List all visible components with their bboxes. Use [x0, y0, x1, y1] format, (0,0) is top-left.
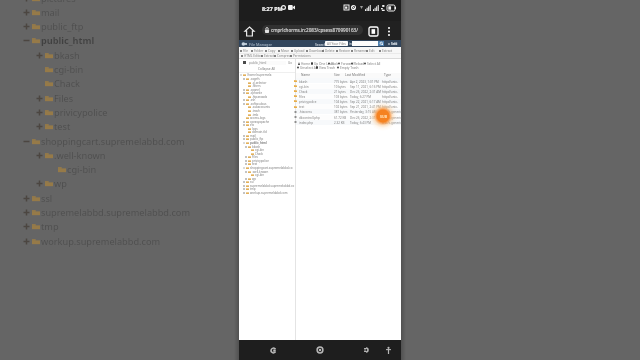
staticText: Files [252, 155, 259, 159]
button[interactable]: HTML Editor [241, 53, 262, 58]
button[interactable]: Upload [291, 48, 305, 53]
button[interactable]: test [239, 162, 295, 166]
button[interactable]: File [240, 48, 248, 53]
button[interactable]: .cagefs [239, 77, 295, 81]
button[interactable]: public_html [239, 141, 295, 145]
button[interactable]: privicypolice [239, 159, 295, 163]
staticText: Yesterday, 3:15 AM [350, 110, 377, 114]
button[interactable] [296, 99, 401, 104]
staticText: httpd/unix-dire [382, 90, 402, 94]
staticText: shoppingcart.supremelabbd.com [41, 135, 185, 148]
staticText: cgi-bin [255, 173, 265, 177]
button[interactable]: Compress [274, 53, 292, 58]
button[interactable]: Accessibility [382, 344, 394, 356]
button[interactable]: etc [239, 123, 295, 127]
button[interactable]: Unselect All [297, 65, 318, 70]
button[interactable]: Search type [325, 41, 348, 46]
button[interactable]: Home [298, 61, 311, 66]
button[interactable]: Restore [336, 48, 351, 53]
button[interactable]: Forward [338, 61, 354, 66]
button[interactable]: mail [239, 134, 295, 138]
staticText: Upload [294, 49, 305, 53]
staticText: File [243, 49, 248, 53]
button[interactable]: Folder [251, 48, 264, 53]
button[interactable]: Reload [351, 61, 365, 66]
staticText: httpd/unix-dire [382, 85, 402, 89]
staticText: Extract [264, 54, 275, 58]
button[interactable]: .softaculous [239, 102, 295, 106]
staticText: tmp [250, 187, 256, 191]
button[interactable]: View Trash [316, 65, 335, 70]
button[interactable]: bkash [239, 145, 295, 149]
button[interactable] [296, 84, 401, 89]
button[interactable]: Delete [322, 48, 335, 53]
button[interactable] [296, 104, 401, 109]
button[interactable]: .cphorde [239, 91, 295, 95]
button[interactable]: Download [306, 48, 324, 53]
button[interactable] [296, 78, 401, 83]
button[interactable]: access-logs [239, 116, 295, 120]
button[interactable]: .tmb [239, 113, 295, 117]
button[interactable] [296, 94, 401, 99]
button[interactable]: .trash [239, 109, 295, 113]
staticText: Edit [369, 49, 375, 53]
button[interactable]: Empty Trash [337, 65, 359, 70]
staticText: .cpanel [250, 88, 260, 92]
button[interactable]: .ssh [239, 98, 295, 102]
button[interactable]: Permissions [290, 53, 311, 58]
button[interactable]: public_ftp [239, 137, 295, 141]
button[interactable] [296, 109, 401, 114]
button[interactable]: domain.tld [239, 130, 295, 134]
button[interactable]: .htpasswds [239, 95, 295, 99]
button[interactable]: cgi-bin [239, 148, 295, 152]
button[interactable]: workup.supremelabbd.com [239, 191, 295, 195]
button[interactable]: Tabs [366, 24, 380, 38]
button[interactable]: Go to folder [239, 60, 295, 65]
staticText: .filters [252, 84, 261, 88]
button[interactable]: Select All [364, 61, 381, 66]
staticText: bkash [299, 80, 308, 84]
button[interactable]: cmprlchorms.in:2083/cpsess870990163/fro.… [262, 25, 363, 35]
button[interactable]: logs [239, 127, 295, 131]
button[interactable]: cpeasyapache [239, 120, 295, 124]
button[interactable]: Extract [379, 48, 393, 53]
button[interactable]: .cpanel [239, 88, 295, 92]
button[interactable] [296, 89, 401, 94]
button[interactable]: Up One Level [311, 61, 334, 66]
button[interactable]: shoppingcart.supremelabbd.com [239, 166, 295, 170]
button[interactable]: ssl [239, 180, 295, 184]
button[interactable]: wp [239, 177, 295, 181]
button[interactable]: Back [328, 61, 339, 66]
button[interactable]: .cl.selector [239, 81, 295, 85]
button[interactable]: Home [242, 24, 256, 38]
button[interactable]: /home/supremela [239, 73, 295, 77]
button[interactable]: Recent apps [359, 343, 373, 357]
button[interactable]: .filters [239, 84, 295, 88]
button[interactable]: Chack [239, 152, 295, 156]
button[interactable]: Edit [366, 48, 375, 53]
button[interactable] [296, 120, 401, 125]
button[interactable] [296, 115, 401, 120]
button[interactable]: Back [266, 343, 280, 357]
button[interactable]: Copy [265, 48, 276, 53]
button[interactable]: More options [382, 24, 396, 38]
button[interactable]: Move [278, 48, 289, 53]
button[interactable]: tmp [239, 187, 295, 191]
staticText: Copy [268, 49, 276, 53]
button[interactable]: .well-known [239, 170, 295, 174]
staticText: .trash [252, 109, 260, 113]
button[interactable]: Collapse All [239, 66, 295, 72]
button[interactable]: Home [313, 343, 327, 357]
button[interactable]: Files [239, 155, 295, 159]
button[interactable]: .subaccounts [239, 105, 295, 109]
button[interactable]: Go [378, 41, 384, 46]
staticText: Chack [299, 90, 308, 94]
button[interactable]: Extract [261, 53, 275, 58]
button[interactable]: Rename [351, 48, 366, 53]
button[interactable]: supremelabbd.supremelabbd.com [239, 184, 295, 188]
button[interactable]: Settings [387, 41, 398, 46]
staticText: Size [334, 73, 340, 77]
button[interactable]: cgi-bin [239, 173, 295, 177]
button[interactable]: Subscribe [377, 110, 390, 123]
